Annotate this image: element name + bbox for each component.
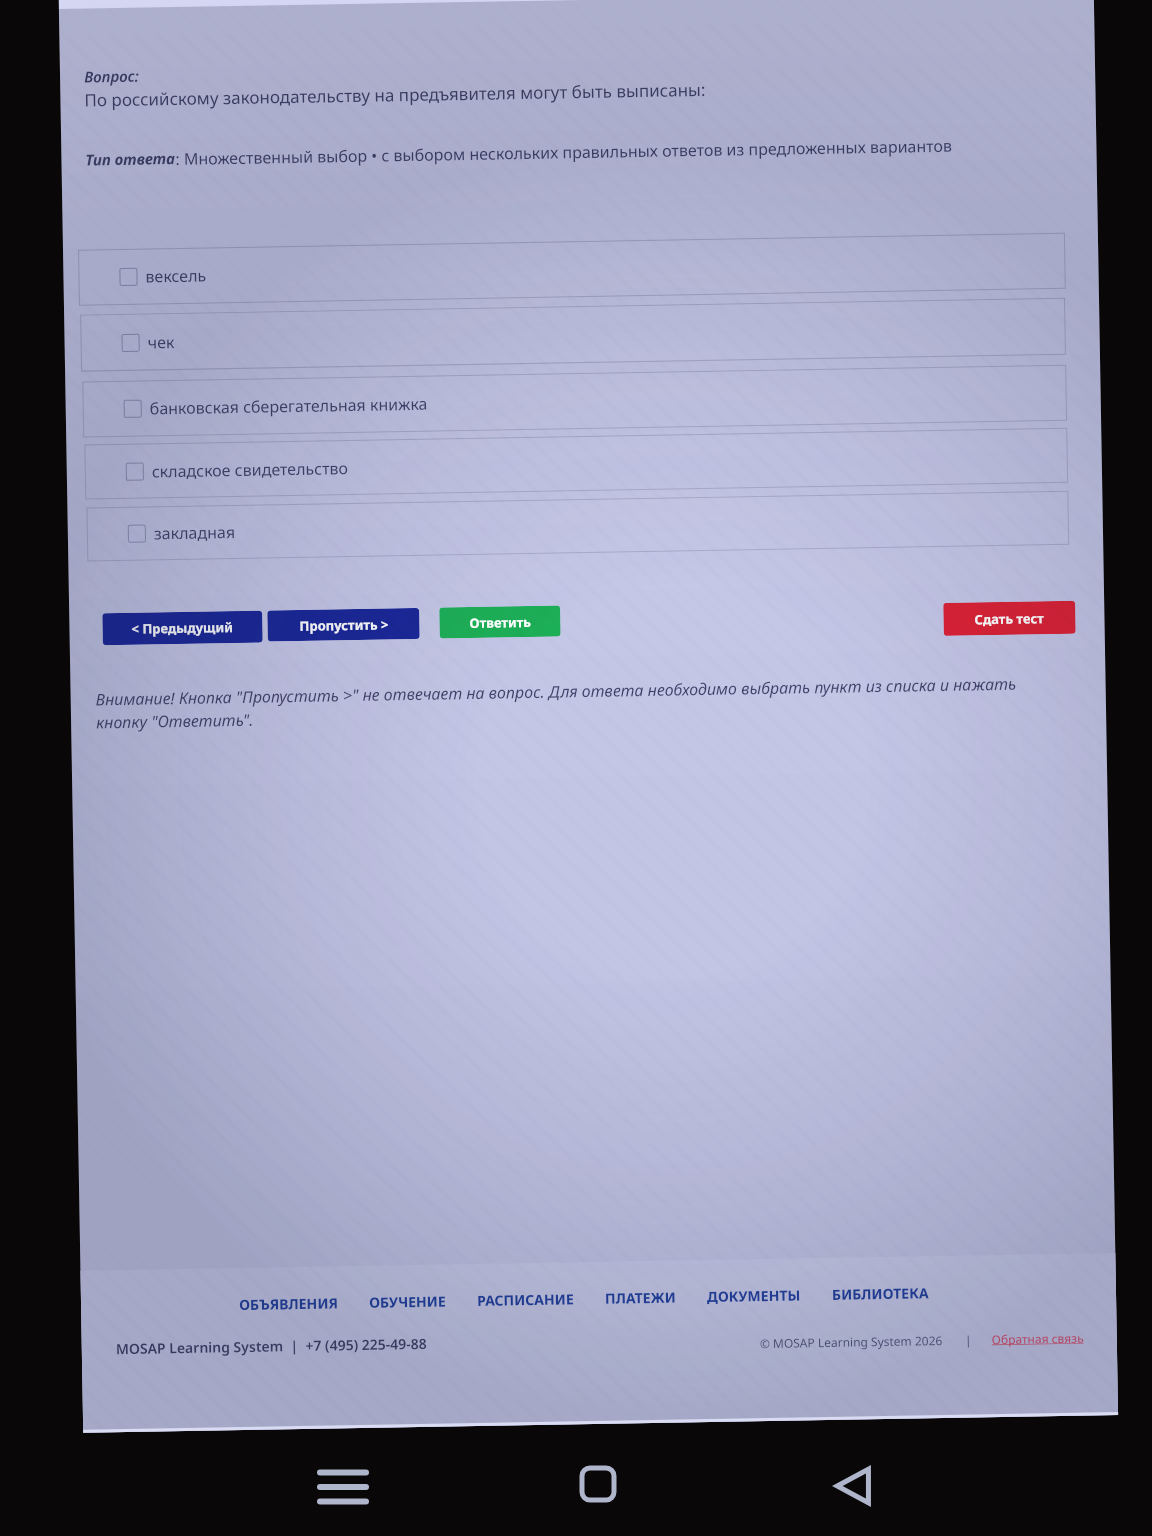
- button[interactable]: Пропустить >: [267, 608, 420, 641]
- staticText: РАСПИСАНИЕ: [477, 1289, 574, 1310]
- button[interactable]: ОБЪЯВЛЕНИЯ: [239, 1293, 338, 1314]
- staticText: ОБЪЯВЛЕНИЯ: [239, 1293, 338, 1314]
- staticText: Тип ответа: [85, 148, 176, 169]
- button[interactable]: банковская сберегательная книжка: [82, 365, 1067, 438]
- button[interactable]: Home: [578, 1464, 618, 1504]
- staticText: ДОКУМЕНТЫ: [707, 1285, 801, 1306]
- staticText: ОБУЧЕНИЕ: [369, 1291, 446, 1312]
- button[interactable]: ОБУЧЕНИЕ: [369, 1291, 446, 1312]
- staticText: банковская сберегательная книжка: [150, 393, 428, 419]
- staticText: < Предыдущий: [131, 618, 234, 638]
- button[interactable]: < Предыдущий: [102, 611, 263, 645]
- button[interactable]: Сдать тест: [943, 601, 1076, 636]
- staticText: |: [965, 1331, 972, 1348]
- staticText: MOSAP Learning System | +7 (495) 225-49-…: [116, 1334, 427, 1358]
- button[interactable]: ПЛАТЕЖИ: [605, 1288, 676, 1308]
- staticText: ПЛАТЕЖИ: [605, 1288, 676, 1308]
- staticText: Вопрос:: [84, 66, 139, 86]
- button[interactable]: складское свидетельство: [84, 428, 1068, 500]
- button[interactable]: чек: [80, 298, 1066, 372]
- button[interactable]: Ответить: [439, 605, 561, 639]
- staticText: © MOSAP Learning System 2026: [760, 1332, 943, 1351]
- button[interactable]: БИБЛИОТЕКА: [832, 1283, 929, 1304]
- button[interactable]: Recent apps: [320, 1464, 366, 1510]
- button[interactable]: Back: [832, 1464, 876, 1508]
- staticText: Пропустить >: [299, 615, 389, 635]
- button[interactable]: Обратная связь: [992, 1330, 1084, 1347]
- staticText: закладная: [154, 521, 236, 544]
- staticText: Внимание! Кнопка "Пропустить >" не отвеч…: [95, 672, 1048, 733]
- staticText: По российскому законодательству на предъ…: [84, 78, 707, 111]
- staticText: вексель: [145, 264, 207, 287]
- button[interactable]: РАСПИСАНИЕ: [477, 1289, 574, 1310]
- staticText: складское свидетельство: [152, 457, 349, 482]
- staticText: БИБЛИОТЕКА: [832, 1283, 929, 1304]
- staticText: чек: [147, 331, 175, 353]
- button[interactable]: ДОКУМЕНТЫ: [707, 1285, 801, 1306]
- staticText: : Множественный выбор • с выбором нескол…: [175, 135, 953, 170]
- staticText: Сдать тест: [974, 609, 1045, 628]
- button[interactable]: вексель: [78, 233, 1066, 306]
- button[interactable]: закладная: [86, 491, 1069, 562]
- staticText: Ответить: [469, 613, 532, 632]
